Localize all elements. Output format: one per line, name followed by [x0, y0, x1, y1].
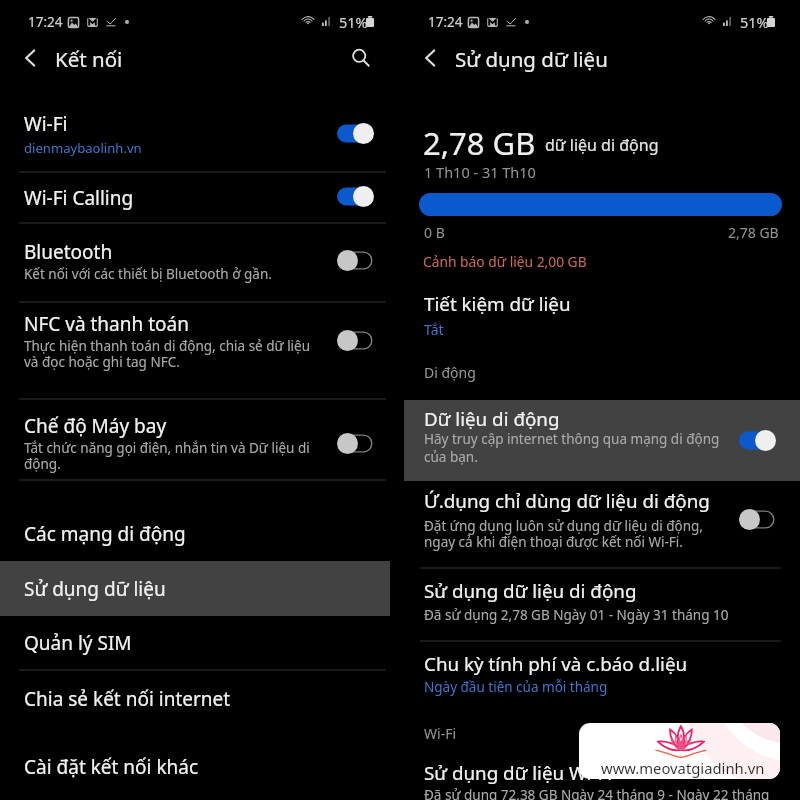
staticText: Wi-Fi Calling: [24, 185, 134, 211]
staticText: và đọc hoặc ghi tag NFC.: [24, 353, 180, 371]
button[interactable]: [0, 493, 390, 561]
button[interactable]: [0, 616, 390, 669]
button[interactable]: Toggle off: [739, 509, 776, 530]
button[interactable]: [400, 567, 800, 639]
staticText: Wi-Fi: [24, 111, 68, 137]
staticText: Bluetooth: [24, 239, 113, 265]
button[interactable]: Toggle off: [337, 330, 374, 351]
button[interactable]: [0, 302, 390, 398]
staticText: 51%: [740, 12, 769, 32]
staticText: 2,78 GB: [423, 122, 536, 164]
staticText: Kết nối với các thiết bị Bluetooth ở gần…: [24, 265, 272, 283]
staticText: 0 B: [424, 223, 445, 242]
staticText: 1 Th10 - 31 Th10: [424, 162, 536, 182]
staticText: Đã sử dụng 2,78 GB Ngày 01 - Ngày 31 thá…: [424, 606, 729, 624]
staticText: www.meovatgiadinh.vn: [601, 758, 765, 778]
button[interactable]: [0, 670, 390, 730]
staticText: Cài đặt kết nối khác: [24, 754, 199, 780]
button[interactable]: [400, 750, 800, 800]
staticText: Tắt chức năng gọi điện, nhắn tin và Dữ l…: [24, 439, 310, 457]
button[interactable]: Search: [341, 40, 381, 80]
staticText: Di động: [424, 363, 476, 382]
button[interactable]: Toggle on: [337, 123, 374, 144]
staticText: Chia sẻ kết nối internet: [24, 686, 231, 712]
staticText: Kết nối: [55, 45, 123, 73]
button[interactable]: [0, 223, 390, 301]
button[interactable]: Toggle on: [337, 186, 374, 207]
staticText: Tiết kiệm dữ liệu: [424, 291, 571, 317]
staticText: Tắt: [424, 320, 444, 339]
staticText: ngay cả khi điện thoại được kết nối Wi-F…: [424, 533, 683, 551]
staticText: Ứ.dụng chỉ dùng dữ liệu di động: [424, 488, 710, 514]
staticText: Hãy truy cập internet thông qua mạng di …: [424, 430, 720, 448]
staticText: Đặt ứng dụng luôn sử dụng dữ liệu di độn…: [424, 517, 703, 535]
button[interactable]: Toggle off: [337, 250, 374, 271]
button[interactable]: Back: [12, 40, 50, 78]
staticText: Sử dụng dữ liệu Wi-Fi: [424, 760, 613, 786]
staticText: Các mạng di động: [24, 521, 186, 547]
staticText: Sử dụng dữ liệu: [24, 576, 166, 602]
staticText: Dữ liệu di động: [424, 406, 560, 432]
staticText: của bạn.: [424, 448, 478, 466]
button[interactable]: [0, 172, 390, 222]
staticText: dữ liệu di động: [545, 134, 659, 156]
staticText: Ngày đầu tiên của mỗi tháng: [424, 678, 608, 696]
button[interactable]: [0, 561, 390, 616]
button[interactable]: [404, 400, 800, 481]
staticText: Sử dụng dữ liệu: [455, 45, 608, 73]
staticText: 17:24: [28, 13, 63, 31]
staticText: Chu kỳ tính phí và c.báo d.liệu: [424, 651, 688, 677]
button[interactable]: [400, 482, 800, 566]
staticText: Cảnh báo dữ liệu 2,00 GB: [423, 252, 587, 271]
staticText: Đã sử dụng 72,38 GB Ngày 24 tháng 9 - Ng…: [424, 786, 770, 800]
staticText: Thực hiện thanh toán di động, chia sẻ dữ…: [24, 337, 311, 355]
staticText: NFC và thanh toán: [24, 311, 189, 337]
button[interactable]: [400, 640, 800, 710]
button[interactable]: Toggle on: [739, 430, 776, 451]
button[interactable]: Back: [412, 40, 450, 78]
button[interactable]: [0, 730, 390, 800]
button[interactable]: [0, 399, 390, 479]
staticText: động.: [24, 455, 61, 473]
staticText: 2,78 GB: [728, 223, 779, 242]
staticText: dienmaybaolinh.vn: [24, 139, 142, 157]
staticText: 17:24: [428, 13, 463, 31]
staticText: Chế độ Máy bay: [24, 413, 167, 439]
staticText: 51%: [339, 12, 368, 32]
button[interactable]: [400, 283, 800, 343]
staticText: Quản lý SIM: [24, 630, 132, 656]
button[interactable]: [0, 100, 390, 171]
staticText: Wi-Fi: [424, 724, 457, 743]
button[interactable]: Toggle off: [337, 433, 374, 454]
staticText: Sử dụng dữ liệu di động: [424, 578, 637, 604]
